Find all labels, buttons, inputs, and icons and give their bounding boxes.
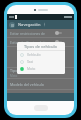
button[interactable]: Moto: [17, 65, 65, 72]
button[interactable]: Vehículo: [17, 51, 65, 58]
button[interactable]: Open navigation menu: [9, 22, 15, 28]
staticText: Taxi: [27, 59, 34, 64]
button[interactable]: Taxi: [17, 58, 65, 65]
button[interactable]: More options: [42, 22, 47, 27]
staticText: Vehículo: [27, 52, 41, 57]
staticText: Evitar vías/ferries de tipo abierto: [10, 40, 54, 45]
staticText: Evitar restricciones de duración tempora…: [10, 31, 54, 36]
button[interactable]: Modelo del vehículo: [7, 79, 74, 89]
staticText: Moto: [27, 66, 36, 71]
staticText: Tipos de vehículo: [10, 68, 40, 73]
button[interactable]: Tipos de vehículo: [7, 68, 74, 78]
staticText: Navegación: [18, 22, 41, 27]
button[interactable]: Evitar restricciones de duración tempora…: [7, 29, 74, 37]
staticText: Tipos de vehículo: [24, 44, 58, 49]
button[interactable]: Home: [34, 105, 48, 111]
staticText: Moto: [10, 74, 18, 78]
button[interactable]: Evitar vías/ferries de tipo abierto: [7, 38, 74, 46]
staticText: Modelo del vehículo: [10, 82, 44, 87]
